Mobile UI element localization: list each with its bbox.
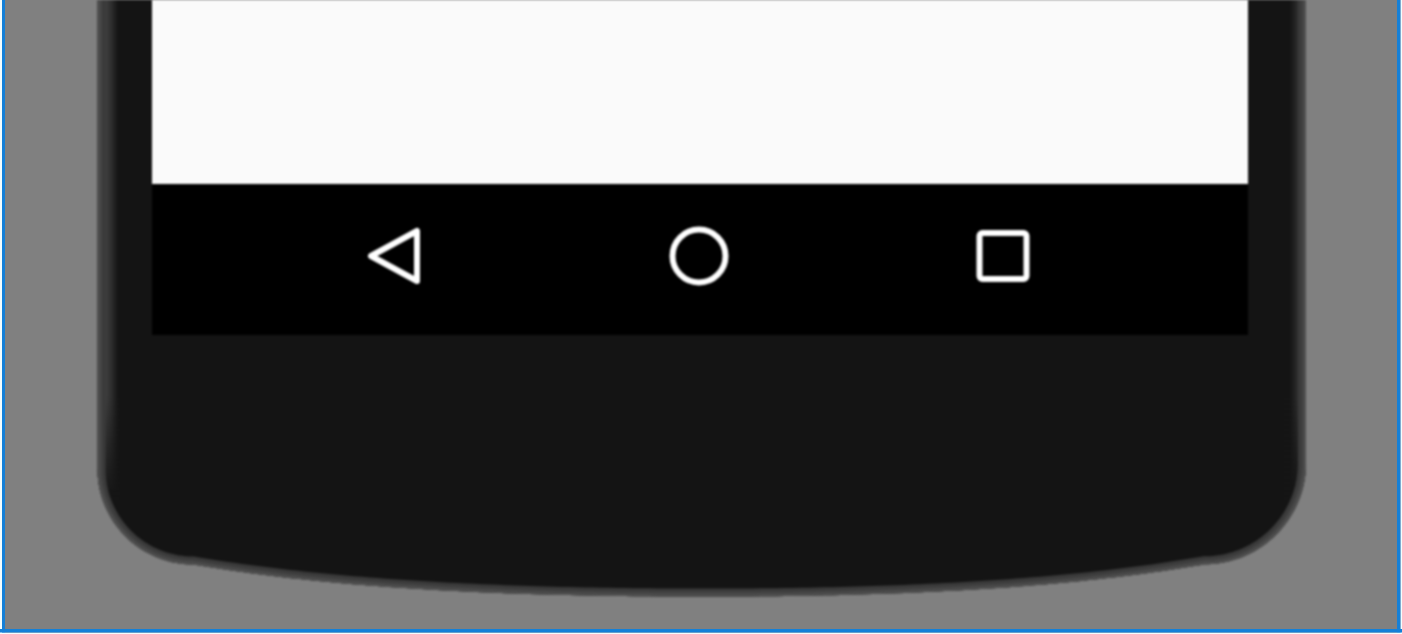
button[interactable]: Back (344, 206, 444, 306)
button[interactable]: Recent apps (953, 206, 1053, 306)
button[interactable]: Home (649, 206, 749, 306)
